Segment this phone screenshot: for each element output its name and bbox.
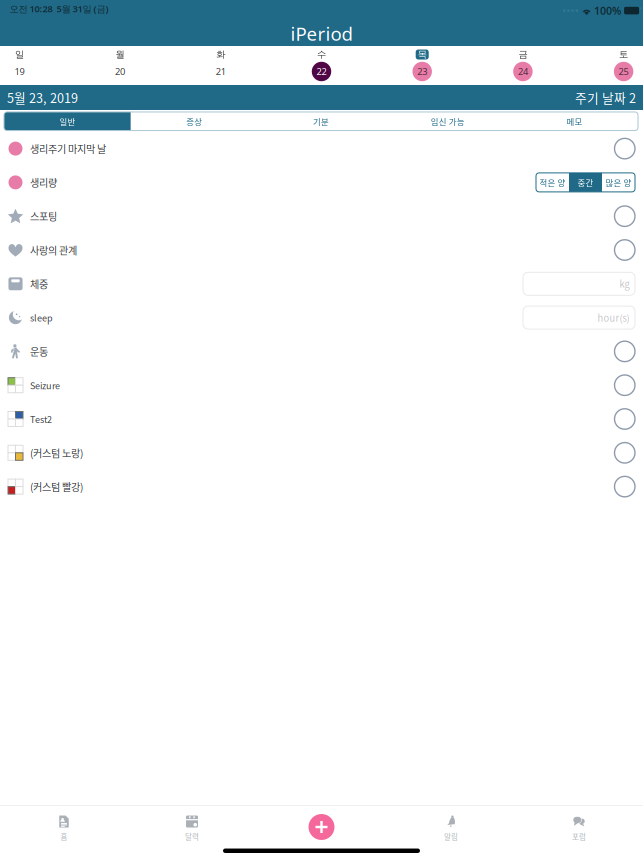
button[interactable]: Test2 [0, 402, 643, 436]
staticText: (커스텀 빨강) [30, 479, 83, 494]
button[interactable]: 화 [199, 49, 243, 81]
button[interactable]: 달력 [128, 806, 256, 848]
button[interactable]: 증상 [131, 112, 258, 131]
button[interactable]: Seizure [0, 368, 643, 402]
button[interactable]: (커스텀 빨강) [0, 470, 643, 503]
staticText: 22 [316, 65, 326, 78]
button[interactable]: 임신 가능 [384, 112, 511, 131]
staticText: (커스텀 노랑) [30, 445, 83, 460]
staticText: 20 [115, 65, 125, 78]
staticText: kg [619, 277, 629, 290]
button[interactable]: 목 [400, 49, 444, 81]
button[interactable]: 토 [602, 49, 643, 81]
staticText: 목 [418, 49, 427, 60]
button[interactable]: 월 [98, 49, 142, 81]
button[interactable]: 운동 [0, 334, 643, 368]
button[interactable]: 메모 [511, 112, 638, 131]
staticText: 수 [317, 49, 326, 60]
staticText: Seizure [30, 379, 60, 392]
staticText: 중간 [577, 176, 593, 188]
staticText: 적은 양 [539, 176, 565, 188]
staticText: 토 [619, 49, 628, 60]
button[interactable]: Add entry [256, 805, 387, 848]
staticText: 21 [216, 65, 226, 78]
staticText: 24 [518, 65, 528, 78]
staticText: 임신 가능 [431, 115, 465, 127]
button[interactable]: sleep [0, 301, 643, 334]
staticText: 금 [518, 49, 527, 60]
button[interactable]: 생리주기 마지막 날 [0, 132, 643, 165]
button[interactable]: 수 [299, 49, 343, 81]
staticText: 월 [116, 49, 125, 60]
staticText: 기분 [313, 115, 329, 127]
staticText: 포럼 [572, 831, 586, 842]
staticText: 23 [417, 65, 427, 78]
staticText: 많은 양 [605, 176, 631, 188]
staticText: 생리주기 마지막 날 [30, 141, 106, 156]
staticText: 오전 10:28 5월 31일 (금) [9, 2, 108, 15]
staticText: 19 [14, 65, 24, 78]
button[interactable]: 사랑의 관계 [0, 233, 643, 267]
button[interactable]: 스포팅 [0, 199, 643, 233]
button[interactable]: 알림 [387, 806, 515, 848]
button[interactable]: 일반 [4, 112, 131, 131]
button[interactable]: 홈 [0, 806, 128, 848]
staticText: 홈 [60, 831, 67, 842]
staticText: Test2 [30, 412, 52, 425]
staticText: 일반 [59, 115, 75, 127]
button[interactable]: 생리량 [0, 165, 643, 199]
staticText: 사랑의 관계 [30, 243, 77, 257]
button[interactable]: (커스텀 노랑) [0, 436, 643, 470]
button[interactable]: 일 [0, 49, 41, 81]
staticText: 알림 [444, 831, 458, 842]
staticText: sleep [30, 311, 53, 324]
staticText: 메모 [567, 115, 583, 127]
staticText: 25 [619, 65, 629, 78]
staticText: 달력 [185, 831, 199, 842]
staticText: 생리량 [30, 175, 57, 190]
staticText: iPeriod [290, 21, 352, 46]
staticText: 주기 날짜 2 [575, 88, 636, 107]
button[interactable]: 금 [501, 49, 545, 81]
staticText: hour(s) [597, 311, 629, 324]
staticText: 5월 23, 2019 [7, 88, 78, 107]
staticText: 일 [15, 49, 24, 60]
staticText: 화 [216, 49, 225, 60]
staticText: 증상 [186, 115, 202, 127]
staticText: 스포팅 [30, 209, 57, 224]
staticText: 운동 [30, 344, 48, 359]
button[interactable]: 포럼 [515, 806, 643, 848]
button[interactable]: 기분 [258, 112, 384, 131]
staticText: 100% [594, 3, 621, 18]
button[interactable]: 체중 [0, 267, 643, 301]
staticText: 체중 [30, 276, 48, 291]
